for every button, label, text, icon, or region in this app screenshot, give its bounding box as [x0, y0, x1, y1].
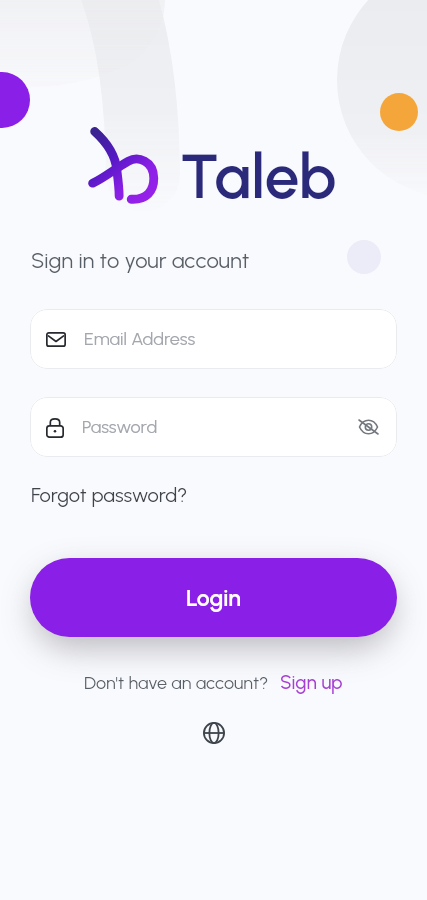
button[interactable]: Email Address: [30, 309, 397, 369]
staticText: Don't have an account?: [84, 672, 269, 694]
button[interactable]: Change language: [198, 717, 230, 749]
staticText: Password: [82, 416, 158, 438]
staticText: Taleb: [180, 139, 337, 213]
button[interactable]: Sign up: [280, 671, 343, 694]
staticText: Email Address: [84, 328, 196, 350]
staticText: Login: [186, 584, 241, 612]
button[interactable]: Forgot password?: [31, 483, 188, 507]
button[interactable]: Show password: [355, 414, 381, 440]
button[interactable]: Login: [30, 558, 397, 637]
button[interactable]: Password: [30, 397, 397, 457]
staticText: Sign up: [280, 671, 343, 694]
staticText: Forgot password?: [31, 483, 188, 507]
staticText: Sign in to your account: [31, 247, 250, 273]
